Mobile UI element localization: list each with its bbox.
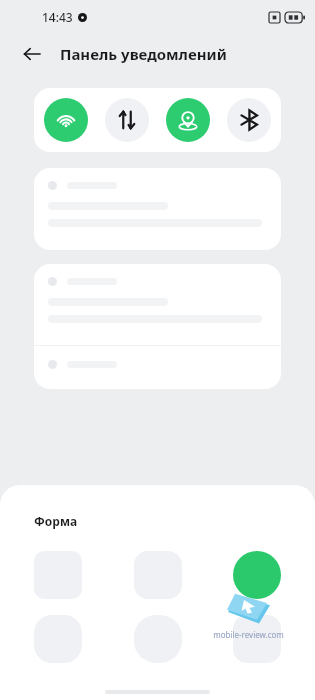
button[interactable] xyxy=(34,264,281,389)
button[interactable]: Rounded square shape xyxy=(134,551,182,599)
button[interactable]: Other shape xyxy=(233,615,281,663)
button[interactable]: Location xyxy=(166,98,210,142)
staticText: mobile-review.com xyxy=(213,629,284,640)
button[interactable] xyxy=(34,168,281,250)
button[interactable]: Rounded shape xyxy=(134,615,182,663)
staticText: Панель уведомлений xyxy=(60,44,227,64)
button[interactable]: Wi-Fi xyxy=(44,98,88,142)
button[interactable]: Bluetooth xyxy=(227,98,271,142)
button[interactable]: Mobile data xyxy=(105,98,149,142)
button[interactable]: Circle shape xyxy=(233,551,281,599)
staticText: 14:43 xyxy=(42,9,73,25)
button[interactable]: Squircle shape xyxy=(34,615,82,663)
staticText: Форма xyxy=(34,513,78,529)
button[interactable]: Back xyxy=(16,38,48,70)
